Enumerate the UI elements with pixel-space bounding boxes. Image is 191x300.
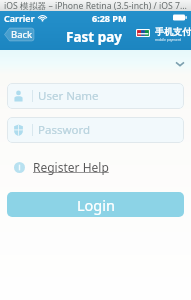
staticText: Password (38, 122, 91, 138)
staticText: mobile payment (155, 37, 181, 42)
staticText: 手机支付 (155, 26, 191, 37)
button[interactable]: Expand (172, 57, 188, 69)
staticText: Back (11, 28, 33, 41)
staticText: iOS 模拟器 – iPhone Retina (3.5-inch) / iOS… (4, 0, 187, 11)
staticText: Fast pay (66, 28, 122, 46)
button[interactable]: Password (7, 117, 184, 143)
button[interactable]: Register Help (14, 159, 109, 175)
staticText: Login (77, 195, 115, 215)
staticText: User Name (38, 88, 99, 104)
button[interactable]: Back (4, 28, 34, 41)
staticText: Register Help (33, 159, 109, 175)
button[interactable]: Login (7, 192, 184, 217)
button[interactable]: User Name (7, 83, 184, 109)
staticText: 6:28 PM (92, 12, 127, 24)
staticText: Carrier (4, 12, 35, 24)
